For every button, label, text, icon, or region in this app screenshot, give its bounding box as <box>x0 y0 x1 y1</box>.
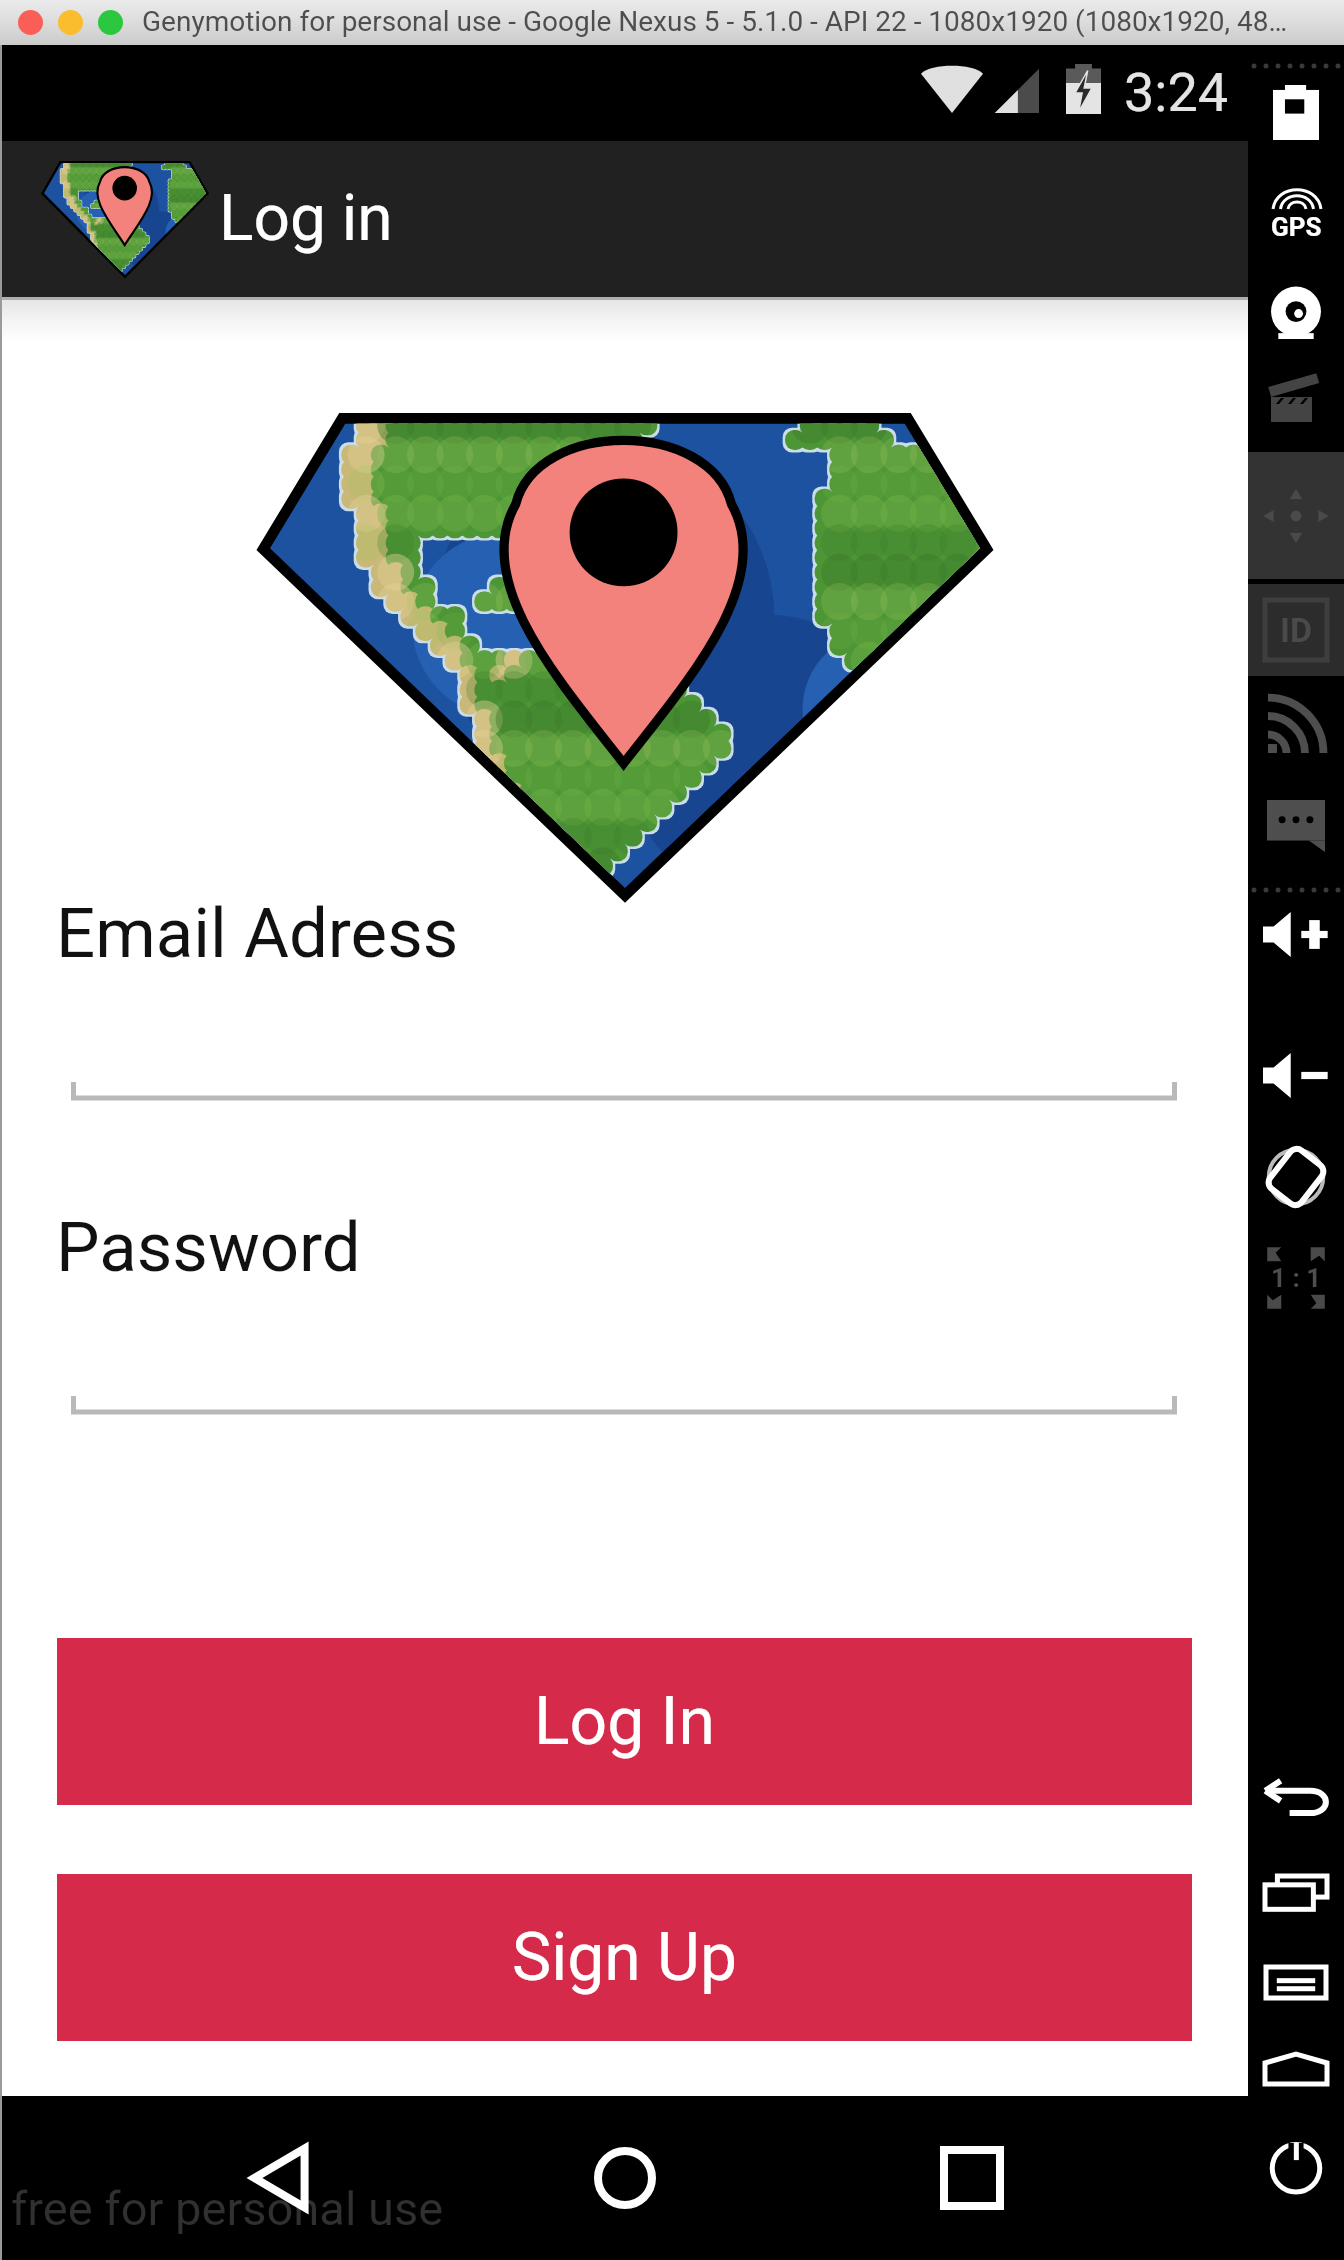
button[interactable]: Scale one to one <box>1248 1230 1344 1325</box>
staticText: ID <box>1280 610 1313 650</box>
button[interactable]: Sign Up <box>57 1874 1192 2041</box>
staticText: Password <box>56 1207 361 1288</box>
button[interactable]: Recent apps <box>890 2096 1054 2260</box>
staticText: 3:24 <box>1124 61 1229 124</box>
button[interactable]: Volume down <box>1248 1038 1344 1112</box>
button[interactable]: GPS <box>1248 179 1344 252</box>
staticText: Sign Up <box>512 1919 737 1996</box>
button[interactable]: Power <box>1248 2129 1344 2202</box>
button[interactable]: Camera <box>1248 277 1344 354</box>
button[interactable]: Home <box>1248 2040 1344 2098</box>
button[interactable]: Maximize window <box>98 10 123 35</box>
staticText: Genymotion for personal use - Google Nex… <box>142 5 1288 38</box>
button[interactable]: Device ID <box>1248 584 1344 676</box>
button[interactable]: Back <box>1248 1766 1344 1830</box>
button[interactable]: Rotate <box>1248 1131 1344 1222</box>
button[interactable]: Minimize window <box>58 10 83 35</box>
button[interactable]: Battery <box>1248 71 1344 154</box>
staticText: free for personal use <box>11 2181 444 2236</box>
button[interactable]: Home <box>543 2096 707 2260</box>
staticText: Log In <box>534 1683 716 1760</box>
button[interactable]: Close window <box>18 10 43 35</box>
button[interactable]: Messages <box>1248 784 1344 867</box>
staticText: GPS <box>1271 212 1322 242</box>
staticText: 1 : 1 <box>1271 1263 1322 1293</box>
button[interactable]: Screen recording <box>1248 365 1344 436</box>
button[interactable]: Recent apps <box>1248 1862 1344 1924</box>
button[interactable]: D-pad <box>1248 452 1344 579</box>
staticText: Log in <box>219 181 393 256</box>
button[interactable]: Volume up <box>1248 898 1344 971</box>
staticText: Email Adress <box>56 893 459 974</box>
button[interactable]: Back <box>197 2096 361 2260</box>
button[interactable]: Log In <box>57 1638 1192 1805</box>
button[interactable]: Menu <box>1248 1953 1344 2012</box>
button[interactable]: Network <box>1248 684 1344 767</box>
